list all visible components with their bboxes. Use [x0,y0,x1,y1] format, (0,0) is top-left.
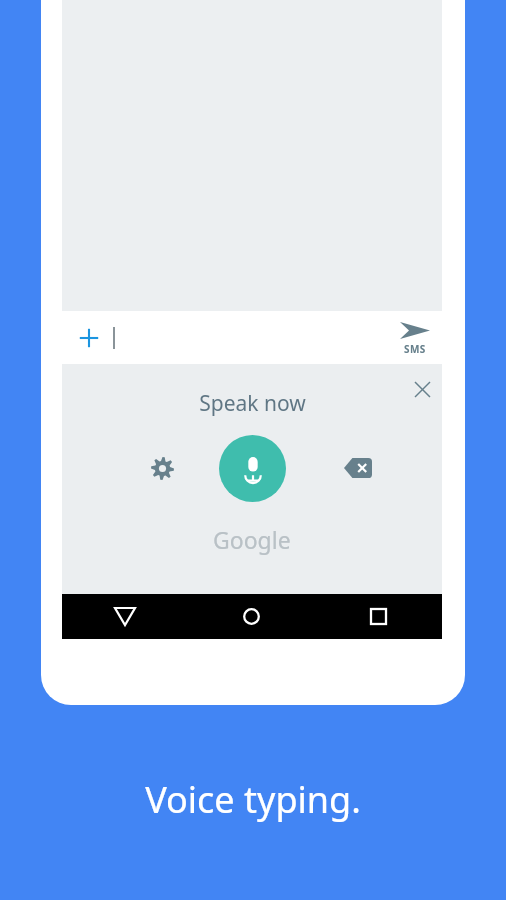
button[interactable]: Send SMS [400,320,430,356]
button[interactable]: Attach [70,319,108,357]
button[interactable]: Close [403,370,441,408]
button[interactable]: Microphone [219,435,286,502]
button[interactable]: Delete [336,446,380,490]
button[interactable]: Back [62,594,188,639]
staticText: Voice typing. [145,775,361,824]
staticText: SMS [404,342,426,356]
button[interactable]: Home [188,594,315,639]
staticText: Speak now [199,389,306,418]
staticText: Google [213,524,291,555]
button[interactable]: Recent apps [315,594,442,639]
button[interactable]: Voice settings [140,446,184,490]
